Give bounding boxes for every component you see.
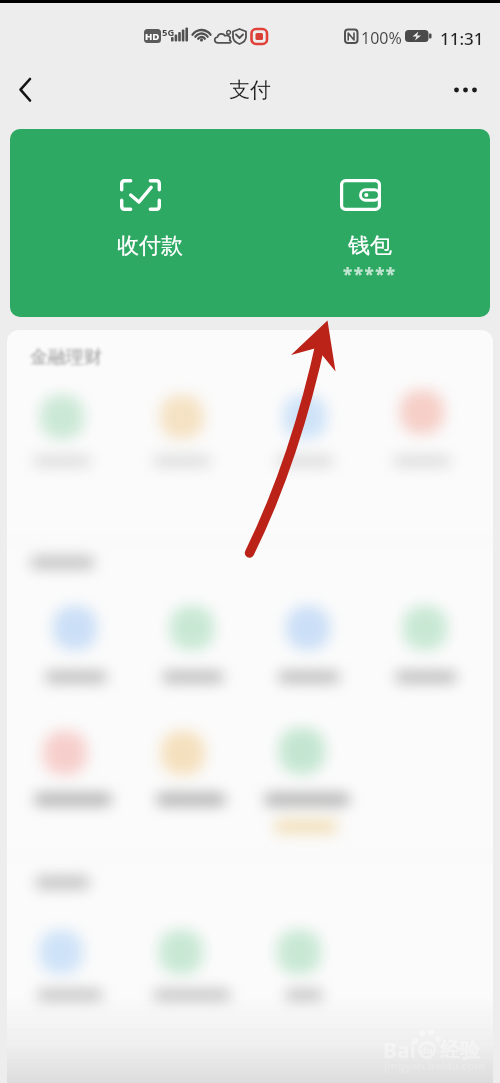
staticText: 收付款 [117, 232, 183, 258]
button[interactable] [250, 129, 490, 317]
staticText: du [421, 1044, 433, 1056]
button[interactable] [442, 70, 492, 110]
staticText: 经验 [440, 1038, 480, 1063]
button[interactable] [6, 70, 50, 110]
staticText: 钱包 [348, 232, 392, 258]
staticText: ***** [343, 263, 397, 285]
button[interactable] [340, 179, 381, 211]
staticText: 5G [162, 26, 175, 38]
staticText: 金融理财 [30, 346, 102, 369]
staticText: 100% [361, 27, 402, 45]
staticText: 支付 [229, 77, 271, 103]
staticText: HD [145, 30, 160, 43]
staticText: 11:31 [440, 27, 484, 46]
button[interactable] [120, 179, 161, 211]
button[interactable] [10, 129, 250, 317]
staticText: Bai [383, 1036, 416, 1065]
